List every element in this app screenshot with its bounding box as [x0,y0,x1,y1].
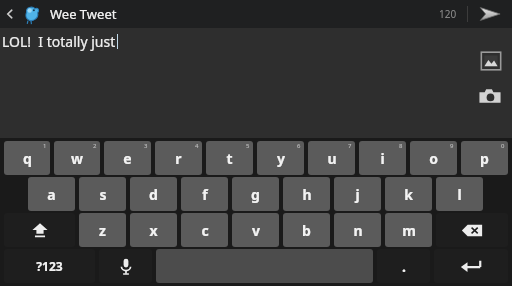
button[interactable]: r [155,141,202,175]
staticText: z [99,221,106,240]
button[interactable]: u [308,141,355,175]
button[interactable]: h [283,177,330,211]
staticText: e [123,149,132,168]
staticText: 5 [246,142,250,150]
button[interactable]: c [181,213,228,247]
staticText: t [226,149,233,168]
staticText: f [202,185,208,204]
staticText: w [71,149,83,168]
button[interactable]: Symbols [4,249,95,283]
staticText: . [402,257,406,276]
button[interactable]: p [461,141,508,175]
button[interactable]: n [334,213,381,247]
button[interactable]: x [130,213,177,247]
staticText: r [175,149,182,168]
button[interactable]: Shift [4,213,75,247]
button[interactable]: y [257,141,304,175]
button[interactable]: Enter [434,249,508,283]
staticText: m [402,221,416,240]
button[interactable]: Back [0,0,20,28]
button[interactable]: f [181,177,228,211]
staticText: n [353,221,363,240]
button[interactable]: v [232,213,279,247]
button[interactable]: Attach image [480,50,502,72]
staticText: d [149,185,158,204]
staticText: 7 [348,142,352,150]
button[interactable]: Period [377,249,430,283]
button[interactable]: d [130,177,177,211]
staticText: x [149,221,158,240]
button[interactable]: e [104,141,151,175]
staticText: 1 [43,142,47,150]
staticText: o [429,149,438,168]
button[interactable]: w [54,141,100,175]
staticText: 4 [195,142,199,150]
staticText: LOL! I totally just [2,32,116,51]
staticText: g [251,185,260,204]
button[interactable]: Take photo [478,84,502,108]
staticText: k [404,185,413,204]
staticText: p [480,149,489,168]
button[interactable]: Voice input [99,249,152,283]
staticText: y [277,149,285,168]
staticText: 2 [93,142,97,150]
staticText: q [23,149,32,168]
button[interactable]: q [4,141,50,175]
staticText: a [47,185,56,204]
button[interactable]: i [359,141,406,175]
staticText: 120 [439,7,457,21]
staticText: ?123 [36,258,63,274]
staticText: 6 [297,142,301,150]
staticText: h [302,185,312,204]
button[interactable]: a [28,177,75,211]
button[interactable]: s [79,177,126,211]
staticText: u [327,149,337,168]
staticText: v [252,221,260,240]
button[interactable]: k [385,177,432,211]
staticText: i [380,149,385,168]
button[interactable]: z [79,213,126,247]
button[interactable]: g [232,177,279,211]
button[interactable]: m [385,213,432,247]
button[interactable]: l [436,177,483,211]
staticText: b [302,221,311,240]
staticText: s [99,185,107,204]
button[interactable]: Send [468,0,512,28]
staticText: j [355,185,360,204]
staticText: l [457,185,462,204]
staticText: 9 [450,142,454,150]
button[interactable]: o [410,141,457,175]
button[interactable]: t [206,141,253,175]
button[interactable]: b [283,213,330,247]
staticText: 0 [501,142,505,150]
button[interactable]: Backspace [436,213,508,247]
staticText: 8 [399,142,403,150]
staticText: c [201,221,209,240]
button[interactable]: j [334,177,381,211]
staticText: Wee Tweet [50,5,117,23]
staticText: 3 [144,142,148,150]
